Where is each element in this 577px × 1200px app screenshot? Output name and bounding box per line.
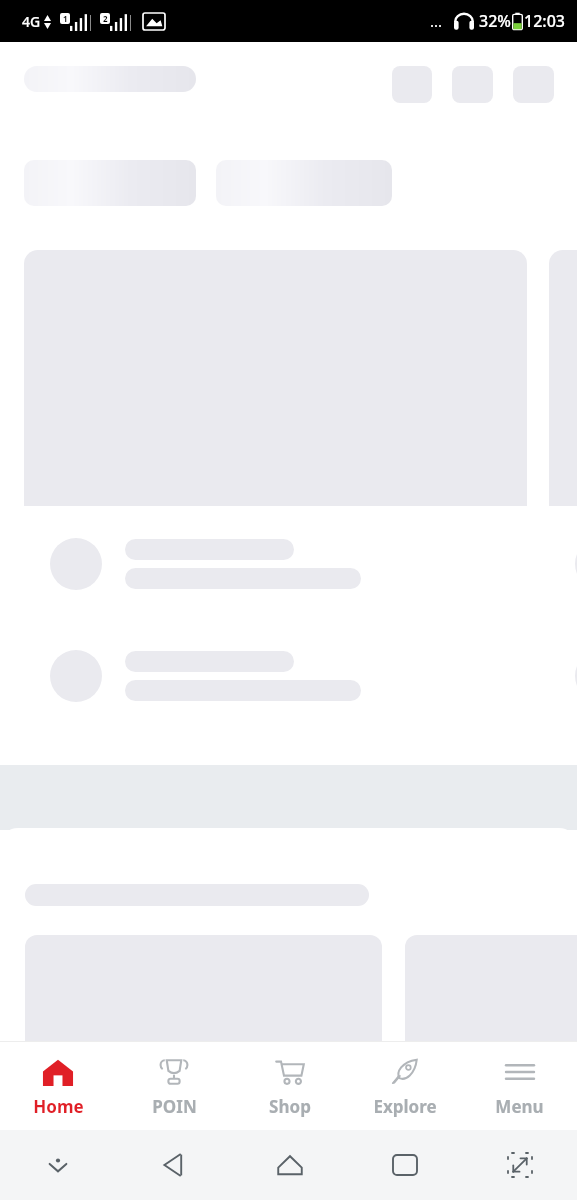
staticText: 4G (22, 12, 41, 31)
staticText: 2 (103, 13, 108, 24)
staticText: ... (430, 11, 443, 31)
button[interactable]: Menu (462, 1042, 577, 1130)
staticText: Home (33, 1095, 84, 1118)
staticText: Menu (495, 1095, 544, 1118)
button[interactable]: Recents (347, 1130, 462, 1200)
button[interactable]: Explore (347, 1042, 462, 1130)
button[interactable] (24, 250, 527, 738)
staticText: 1 (63, 13, 68, 24)
button[interactable]: Home (0, 1042, 116, 1130)
staticText: 32% (479, 10, 511, 32)
staticText: Shop (269, 1095, 311, 1118)
button[interactable]: Home (232, 1130, 347, 1200)
button[interactable]: Full screen (462, 1130, 577, 1200)
staticText: POIN (152, 1095, 197, 1118)
staticText: 12:03 (524, 10, 565, 32)
button[interactable]: Hide (0, 1130, 116, 1200)
button[interactable]: POIN (116, 1042, 232, 1130)
button[interactable]: Shop (232, 1042, 347, 1130)
button[interactable] (549, 250, 577, 738)
staticText: Explore (373, 1095, 437, 1118)
button[interactable]: Back (116, 1130, 232, 1200)
